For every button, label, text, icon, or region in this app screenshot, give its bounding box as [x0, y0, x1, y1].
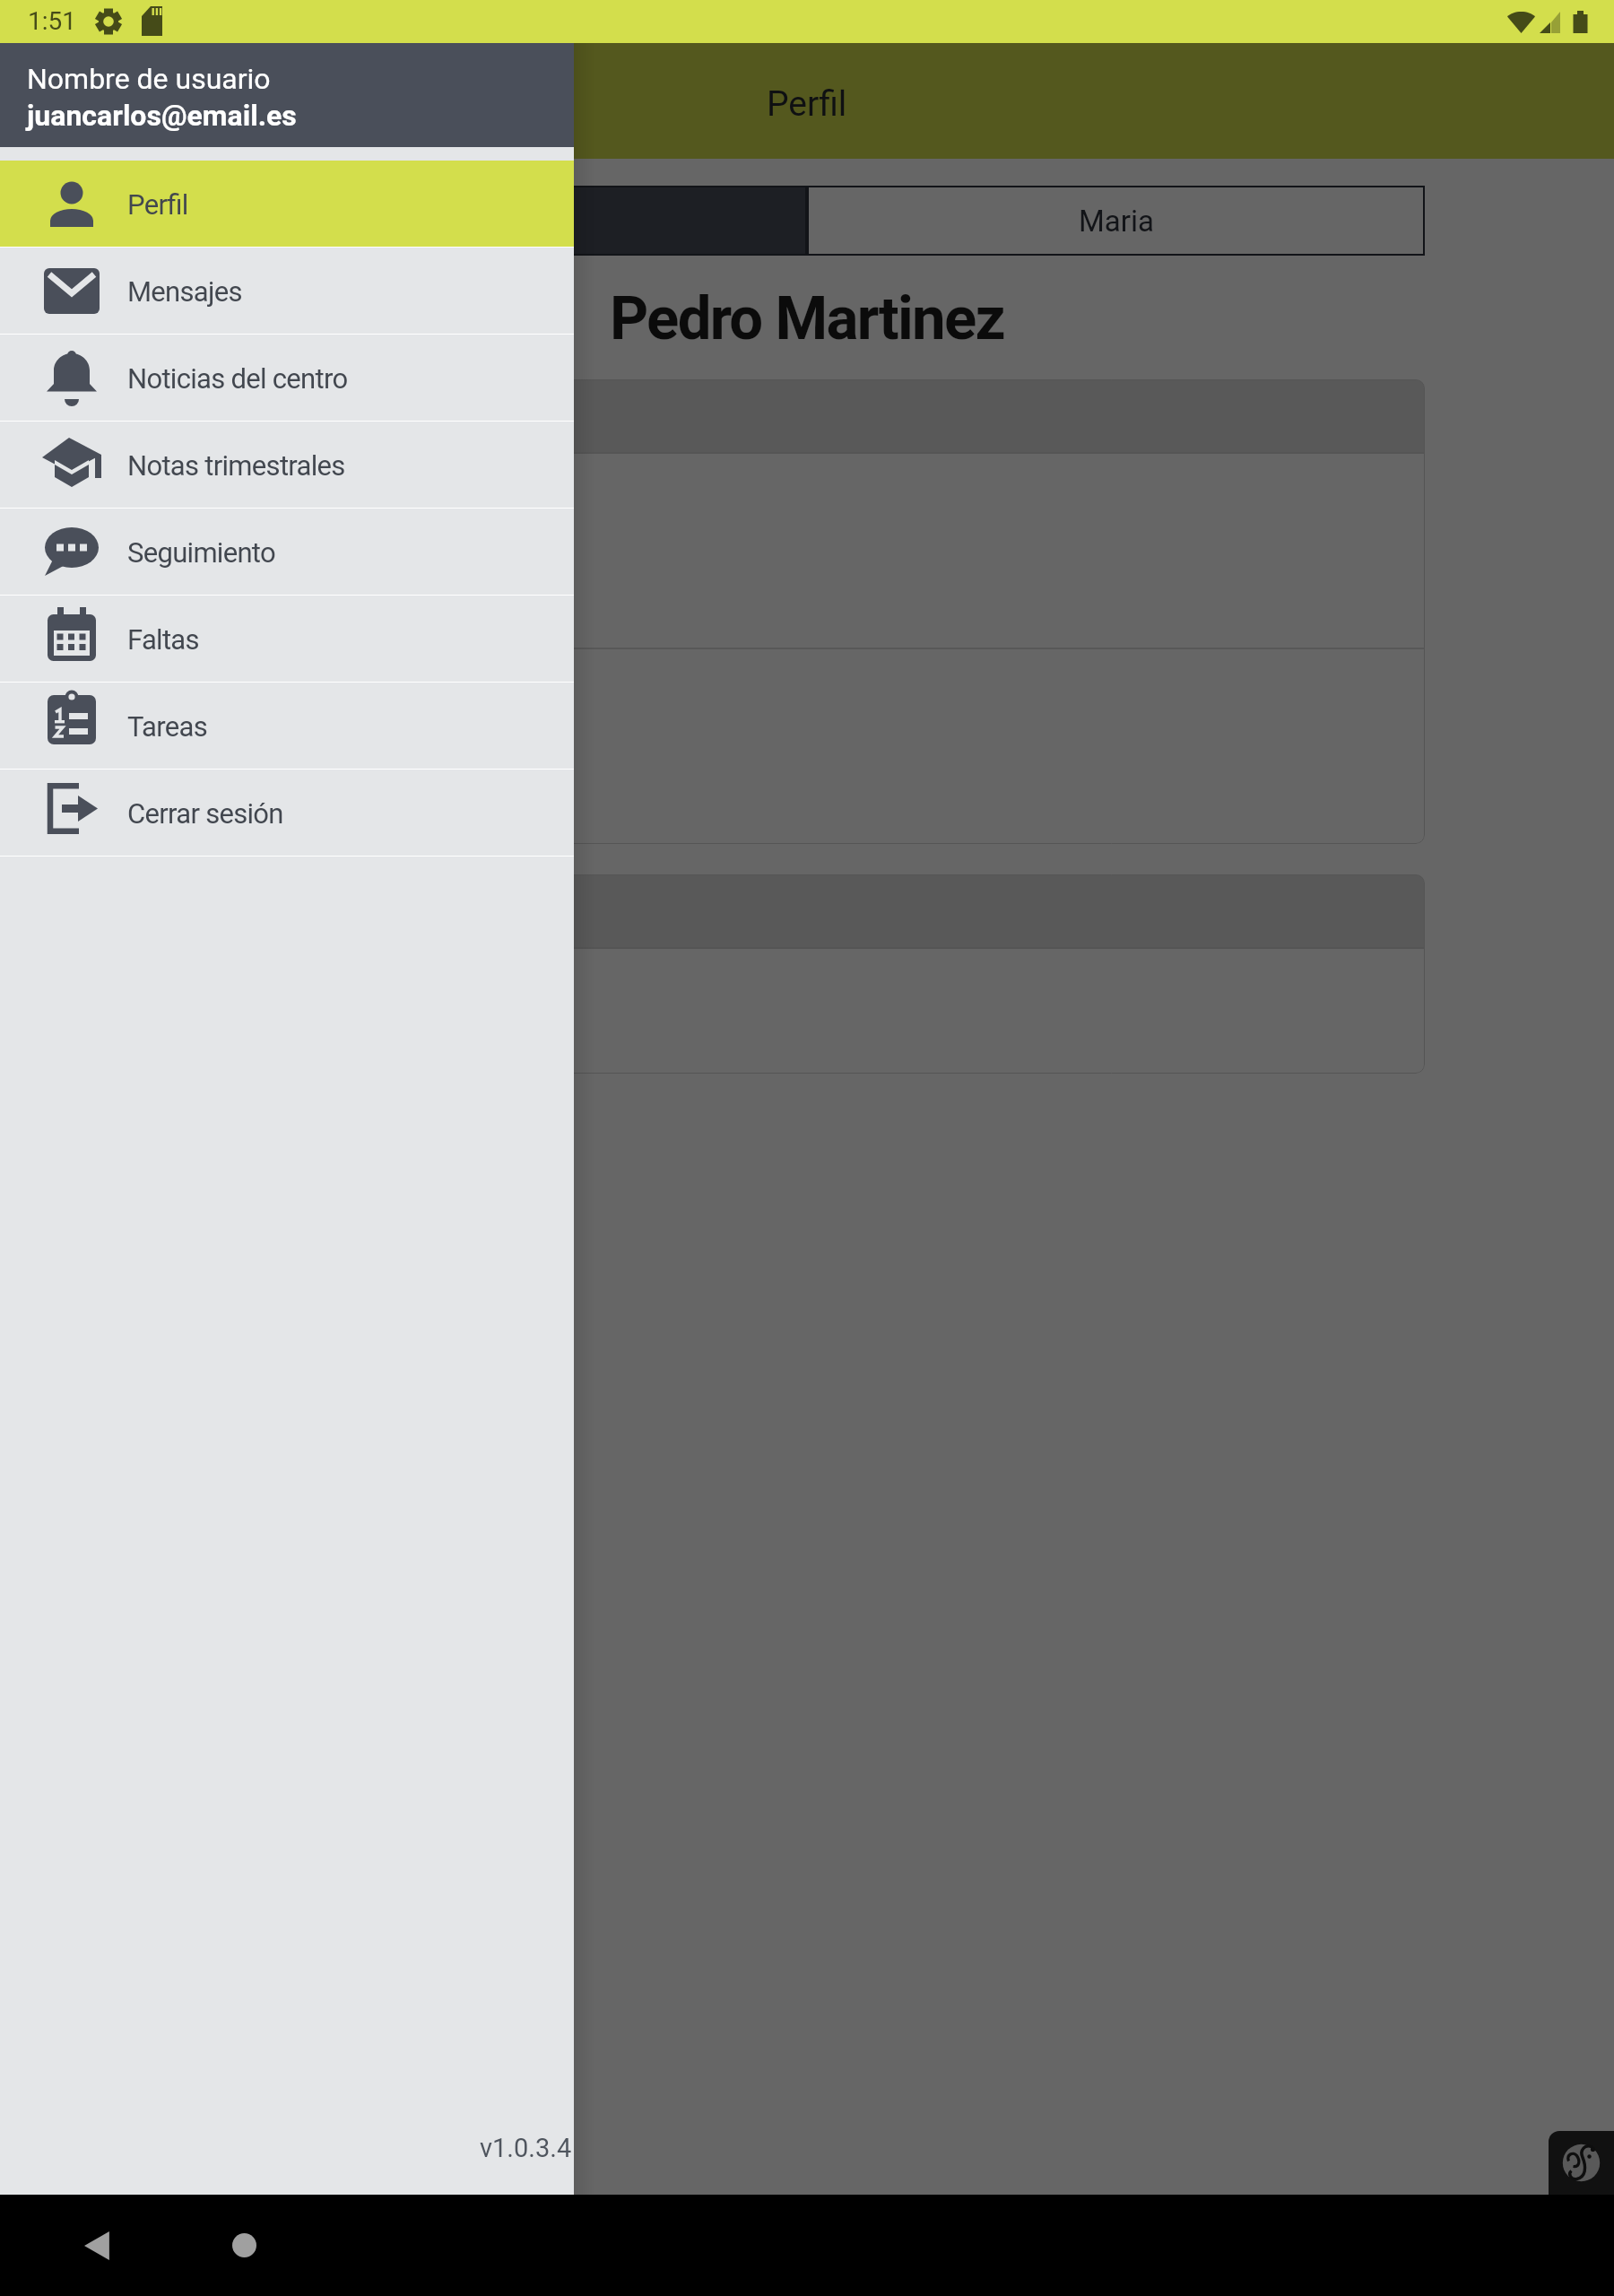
button[interactable]: Back — [48, 2195, 150, 2296]
button[interactable]: Cerrar sesión — [0, 770, 574, 856]
button[interactable] — [189, 379, 1425, 844]
staticText: Seguimiento — [127, 536, 275, 569]
staticText: Perfil — [127, 188, 188, 221]
button[interactable]: Seguimiento — [0, 509, 574, 595]
button[interactable]: Notas trimestrales — [0, 422, 574, 508]
staticText: 1:51 — [28, 6, 76, 36]
button[interactable]: Noticias del centro — [0, 335, 574, 421]
button[interactable]: Home — [194, 2195, 295, 2296]
staticText: Perfil — [767, 83, 847, 125]
staticText: Noticias del centro — [127, 362, 348, 395]
button[interactable]: Nombre de usuario — [0, 43, 574, 147]
staticText: Nombre de usuario — [27, 62, 271, 96]
staticText: Tareas — [127, 710, 207, 743]
button[interactable]: Mensajes — [0, 248, 574, 334]
button[interactable]: Faltas — [0, 596, 574, 682]
button[interactable]: Maria — [807, 186, 1425, 256]
staticText: v1.0.3.4 — [480, 2133, 572, 2163]
button[interactable]: Tareas — [0, 683, 574, 769]
button[interactable] — [0, 43, 1614, 2195]
staticText: Mensajes — [127, 275, 242, 308]
button[interactable]: Perfil — [0, 161, 574, 247]
staticText: Faltas — [127, 623, 199, 656]
button[interactable] — [189, 874, 1425, 1074]
button[interactable]: Symfony profiler — [1549, 2131, 1614, 2195]
staticText: juancarlos@email.es — [27, 99, 297, 133]
button[interactable]: Pedro — [189, 186, 807, 256]
staticText: Notas trimestrales — [127, 449, 345, 482]
staticText: Maria — [1079, 204, 1154, 239]
staticText: Cerrar sesión — [127, 797, 283, 830]
staticText: Pedro Martinez — [610, 283, 1004, 354]
